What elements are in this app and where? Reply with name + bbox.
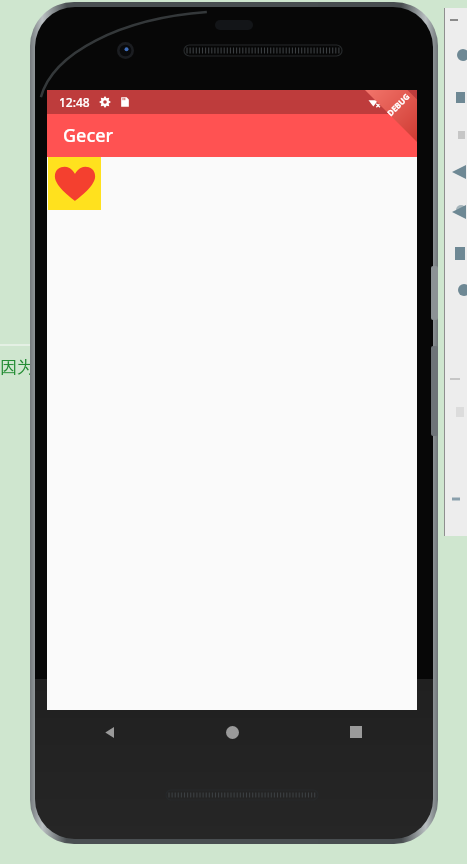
button[interactable]: Favorite [48,157,101,210]
staticText: 因为 [0,357,34,378]
staticText: DEBUG [375,81,421,127]
staticText: Gecer [63,123,114,148]
button[interactable]: Back [47,710,171,754]
button[interactable]: Recent apps [294,710,417,754]
staticText: 12:48 [59,94,90,110]
button[interactable]: Home [171,710,294,754]
